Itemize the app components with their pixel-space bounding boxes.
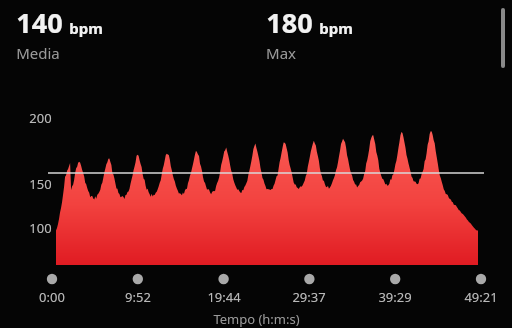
staticText: 180 xyxy=(266,4,313,41)
button[interactable]: Max 180 bpm xyxy=(266,4,361,67)
staticText: 49:21 xyxy=(464,288,498,306)
staticText: 150 xyxy=(29,175,52,193)
staticText: Tempo (h:m:s) xyxy=(213,310,300,328)
staticText: Media xyxy=(16,43,60,63)
staticText: 19:44 xyxy=(207,288,241,306)
staticText: 200 xyxy=(29,109,52,127)
staticText: 0:00 xyxy=(39,288,65,306)
staticText: Max xyxy=(266,43,296,63)
staticText: 29:37 xyxy=(292,288,326,306)
staticText: bpm xyxy=(69,18,103,38)
staticText: bpm xyxy=(319,18,353,38)
staticText: 9:52 xyxy=(125,288,151,306)
staticText: 140 xyxy=(16,4,63,41)
button[interactable]: Media 140 bpm xyxy=(16,4,266,67)
staticText: 100 xyxy=(29,219,52,237)
staticText: 39:29 xyxy=(378,288,412,306)
